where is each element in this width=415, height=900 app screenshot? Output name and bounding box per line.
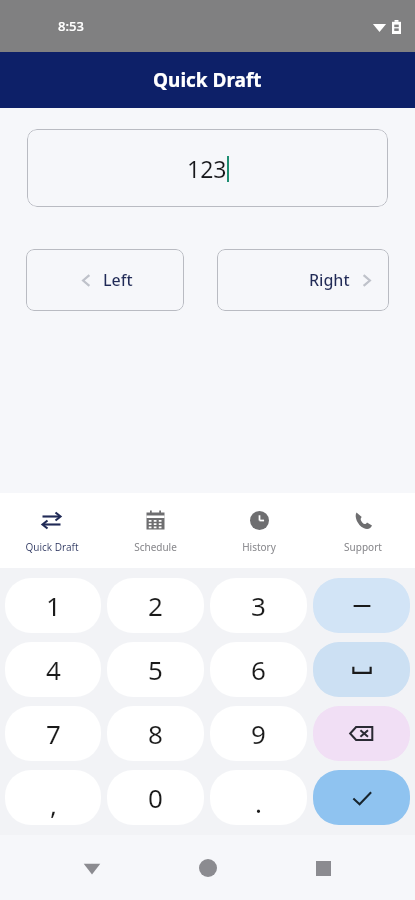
button[interactable]: 3 [210, 578, 307, 633]
button[interactable]: 4 [5, 642, 101, 697]
staticText: Right [309, 269, 350, 291]
button[interactable]: 0 [107, 770, 204, 825]
button[interactable]: 1 [5, 578, 101, 633]
button[interactable]: Back [68, 844, 116, 892]
button[interactable]: 5 [107, 642, 204, 697]
button[interactable]: Schedule [103, 493, 207, 568]
button[interactable]: 7 [5, 706, 101, 761]
button[interactable]: 2 [107, 578, 204, 633]
staticText: 6 [251, 652, 266, 687]
button[interactable]: Left [26, 249, 184, 311]
staticText: 4 [46, 652, 61, 687]
staticText: 2 [148, 588, 163, 623]
staticText: History [242, 540, 276, 554]
button[interactable]: History [207, 493, 311, 568]
staticText: . [255, 785, 262, 820]
button[interactable]: 9 [210, 706, 307, 761]
button[interactable]: Home [184, 844, 232, 892]
staticText: 8 [148, 716, 163, 751]
staticText: 0 [148, 780, 163, 815]
staticText: Quick Draft [25, 540, 79, 554]
staticText: Schedule [134, 540, 177, 554]
button[interactable]: 6 [210, 642, 307, 697]
button[interactable]: Enter [313, 770, 410, 825]
button[interactable]: Recent apps [299, 844, 347, 892]
button[interactable]: Support [311, 493, 415, 568]
staticText: 7 [46, 716, 61, 751]
staticText: 8:53 [58, 17, 84, 35]
button[interactable]: Backspace [313, 706, 410, 761]
staticText: 1 [46, 588, 61, 623]
button[interactable]: Space [313, 642, 410, 697]
staticText: , [50, 787, 57, 822]
staticText: 9 [251, 716, 266, 751]
button[interactable]: Quick Draft [0, 493, 103, 568]
staticText: 3 [251, 588, 266, 623]
button[interactable]: Right [217, 249, 389, 311]
button[interactable]: 8 [107, 706, 204, 761]
button[interactable]: , [5, 770, 101, 825]
staticText: Quick Draft [153, 67, 262, 93]
button[interactable]: Minus [313, 578, 410, 633]
staticText: 123 [187, 153, 227, 184]
button[interactable]: . [210, 770, 307, 825]
staticText: 5 [148, 652, 163, 687]
staticText: Support [344, 540, 382, 554]
staticText: Left [103, 269, 133, 291]
button[interactable]: 123 [27, 129, 388, 207]
